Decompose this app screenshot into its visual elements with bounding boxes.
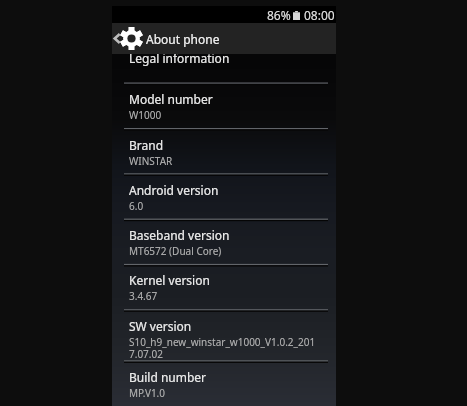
staticText: Model number [129,91,213,107]
other: Back [114,32,120,45]
staticText: 6.0 [129,199,144,213]
staticText: 86% [267,7,291,23]
button[interactable]: Model number [112,84,336,128]
staticText: Brand [129,137,164,153]
staticText: 3.4.67 [129,289,158,303]
staticText: MT6572 (Dual Core) [129,244,222,258]
staticText: Baseband version [129,227,230,243]
staticText: Build number [129,369,207,385]
button[interactable]: Legal information [112,54,336,83]
button[interactable]: Android version [112,175,336,219]
staticText: Android version [129,182,219,198]
staticText: MP.V1.0 [129,386,166,400]
button[interactable]: Brand [112,130,336,174]
staticText: W1000 [129,108,162,122]
staticText: WINSTAR [129,154,173,168]
staticText: SW version [129,318,192,334]
staticText: 08:00 [304,7,335,23]
button[interactable]: SW version [112,311,336,361]
button[interactable]: Build number [112,362,336,406]
staticText: About phone [146,31,220,47]
button[interactable]: Kernel version [112,265,336,309]
button[interactable]: Back [112,23,336,54]
staticText: Kernel version [129,272,210,288]
button[interactable]: Baseband version [112,220,336,264]
staticText: Legal information [129,50,230,66]
staticText: S10_h9_new_winstar_w1000_V1.0.2_201​7.07… [129,335,327,361]
